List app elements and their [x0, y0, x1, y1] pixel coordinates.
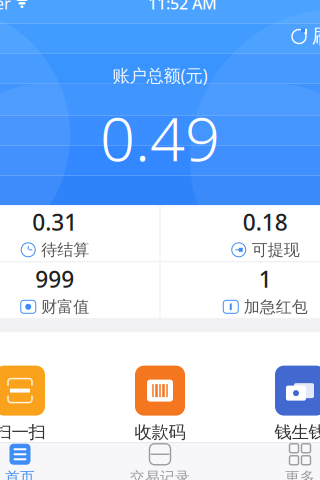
staticText: 11:52 AM — [148, 0, 217, 14]
button[interactable]: 扫一扫 — [0, 366, 90, 443]
staticText: 0.49 — [100, 97, 220, 178]
staticText: 账户总额(元) — [112, 64, 207, 87]
button[interactable]: 更多 — [230, 443, 320, 480]
staticText: 刷新 — [312, 24, 320, 49]
button[interactable]: 1 — [160, 262, 320, 318]
staticText: 更多 — [285, 468, 315, 480]
button[interactable]: 首页 — [0, 443, 90, 480]
staticText: 扫一扫 — [0, 422, 45, 443]
button[interactable]: 交易记录 — [90, 443, 230, 480]
staticText: 交易记录 — [130, 468, 190, 480]
staticText: 可提现 — [252, 240, 300, 260]
staticText: 加急红包 — [244, 297, 308, 317]
staticText: 待结算 — [41, 240, 89, 260]
button[interactable]: 0.18 — [160, 205, 320, 261]
button[interactable]: 钱生钱 — [230, 366, 320, 443]
staticText: 收款码 — [134, 422, 185, 443]
button[interactable]: 收款码 — [90, 366, 230, 443]
staticText: 首页 — [5, 468, 35, 480]
staticText: 999 — [35, 264, 74, 294]
staticText: 0.31 — [32, 207, 77, 237]
staticText: Carrier — [0, 0, 11, 14]
staticText: 钱生钱 — [274, 422, 320, 443]
button[interactable]: 刷新 — [281, 19, 320, 54]
staticText: 财富值 — [41, 297, 89, 317]
button[interactable]: 999 — [0, 262, 159, 318]
staticText: 0.18 — [243, 207, 288, 237]
staticText: 1 — [259, 264, 272, 294]
button[interactable]: 0.31 — [0, 205, 159, 261]
